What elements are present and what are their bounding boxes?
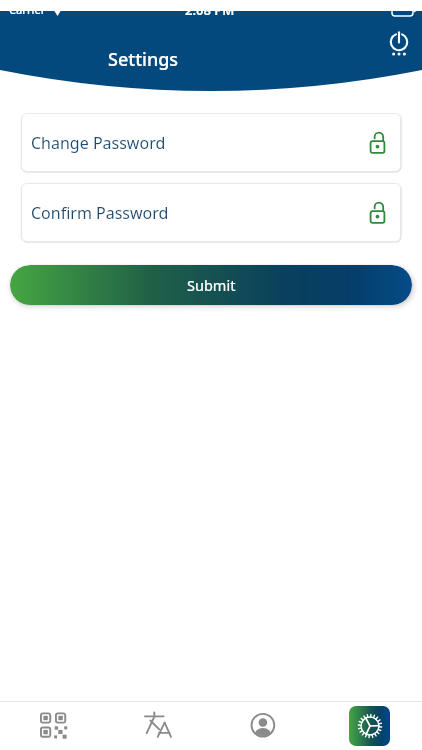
staticText: Change Password — [31, 132, 166, 154]
button[interactable]: Translate — [138, 705, 180, 747]
button[interactable]: Settings — [349, 706, 390, 746]
button[interactable]: Confirm Password — [21, 183, 401, 242]
staticText: Settings — [108, 47, 179, 72]
button[interactable]: Change Password — [21, 113, 401, 172]
button[interactable]: Power options — [383, 28, 415, 60]
button[interactable]: Account — [243, 705, 285, 747]
button[interactable]: Submit — [10, 265, 412, 305]
staticText: Submit — [187, 275, 236, 295]
button[interactable]: Scan QR code — [32, 705, 74, 747]
staticText: Confirm Password — [31, 202, 169, 224]
staticText: 2:08 PM — [185, 1, 235, 19]
staticText: Carrier — [9, 2, 46, 17]
